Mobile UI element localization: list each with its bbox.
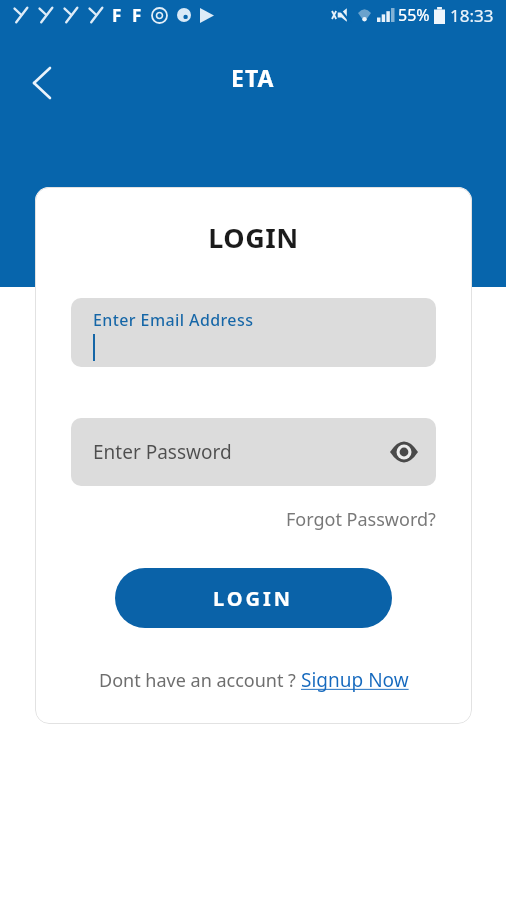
button[interactable]: LOGIN — [115, 568, 392, 628]
staticText: Enter Email Address — [93, 309, 254, 331]
staticText: Dont have an account ? — [99, 668, 301, 693]
staticText: 18:33 — [450, 4, 494, 27]
button[interactable]: Forgot Password? — [286, 507, 436, 532]
button[interactable] — [390, 441, 418, 463]
staticText: Enter Password — [93, 439, 232, 465]
staticText: F — [132, 4, 142, 27]
staticText: Signup Now — [301, 667, 409, 693]
staticText: F — [112, 4, 122, 27]
button[interactable]: Enter Email Address — [71, 298, 436, 367]
staticText: LOGIN — [213, 585, 294, 612]
button[interactable] — [32, 66, 52, 100]
staticText: 55% — [398, 4, 430, 26]
button[interactable]: Enter Password — [71, 418, 436, 486]
staticText: LOGIN — [35, 219, 472, 256]
staticText: ETA — [231, 62, 275, 93]
button[interactable]: Dont have an account ? — [99, 667, 409, 693]
